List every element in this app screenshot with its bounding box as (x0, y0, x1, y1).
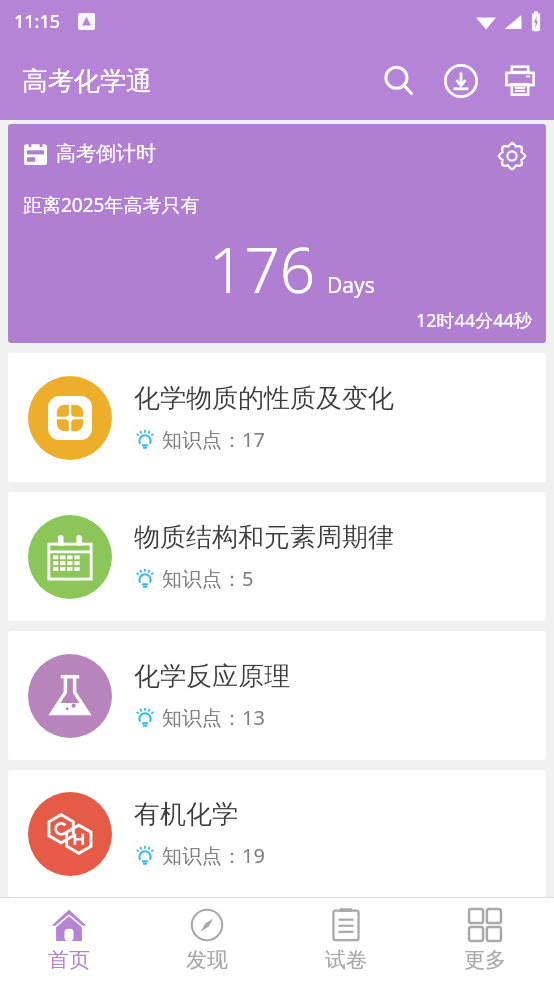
staticText: 11:15 (14, 9, 61, 34)
staticText: 物质结构和元素周期律 (134, 521, 394, 554)
staticText: 化学反应原理 (134, 660, 290, 693)
button[interactable]: Search (368, 50, 430, 112)
button[interactable]: Settings (492, 136, 532, 176)
button[interactable]: 化学物质的性质及变化 (8, 353, 546, 482)
button[interactable]: 有机化学 (8, 770, 546, 897)
staticText: 距离2025年高考只有 (23, 192, 200, 218)
staticText: 176 (209, 227, 316, 311)
button[interactable]: 发现 (138, 898, 276, 984)
staticText: 首页 (48, 947, 90, 973)
staticText: 高考倒计时 (56, 141, 156, 166)
staticText: 化学物质的性质及变化 (134, 382, 394, 415)
staticText: 试卷 (325, 947, 367, 973)
staticText: 更多 (464, 947, 506, 973)
button[interactable]: 首页 (0, 898, 138, 984)
staticText: 知识点：17 (162, 426, 265, 453)
staticText: Days (327, 271, 375, 300)
button[interactable]: 高考倒计时 (8, 124, 546, 343)
staticText: 知识点：5 (162, 565, 254, 592)
staticText: 12时44分44秒 (416, 308, 532, 333)
button[interactable]: 试卷 (276, 898, 415, 984)
button[interactable]: Print (492, 50, 548, 112)
staticText: 知识点：13 (162, 704, 265, 731)
staticText: 知识点：19 (162, 842, 265, 869)
button[interactable]: 更多 (415, 898, 554, 984)
staticText: 发现 (186, 947, 228, 973)
staticText: 高考化学通 (22, 65, 152, 98)
button[interactable]: 化学反应原理 (8, 631, 546, 760)
staticText: 有机化学 (134, 798, 238, 831)
button[interactable]: Download (430, 50, 492, 112)
button[interactable]: 物质结构和元素周期律 (8, 492, 546, 621)
